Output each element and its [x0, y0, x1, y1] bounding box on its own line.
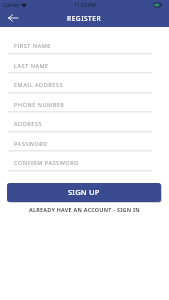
staticText: 11:23 PM — [74, 2, 96, 9]
staticText: Carrier — [3, 2, 20, 9]
button[interactable]: PASSWORD — [8, 133, 152, 152]
staticText: PHONE NUMBER — [14, 101, 65, 109]
staticText: REGISTER — [67, 14, 102, 23]
staticText: ADDRESS — [14, 120, 42, 128]
button[interactable]: CONFIRM PASSWORD — [8, 152, 152, 172]
button[interactable]: FIRST NAME — [8, 35, 152, 55]
staticText: PASSWORD — [14, 140, 48, 148]
button[interactable]: ADDRESS — [8, 113, 152, 133]
staticText: ALREADY HAVE AN ACCOUNT - SIGN IN — [29, 206, 140, 213]
button[interactable]: EMAIL ADDRESS — [8, 74, 152, 94]
button[interactable]: PHONE NUMBER — [8, 94, 152, 113]
button[interactable]: ALREADY HAVE AN ACCOUNT - SIGN IN — [25, 204, 144, 215]
staticText: EMAIL ADDRESS — [14, 81, 64, 89]
staticText: FIRST NAME — [14, 42, 51, 50]
staticText: LAST NAME — [14, 62, 49, 70]
button[interactable]: LAST NAME — [8, 55, 152, 74]
staticText: SIGN UP — [68, 187, 100, 197]
button[interactable]: SIGN UP — [7, 183, 161, 202]
staticText: CONFIRM PASSWORD — [14, 159, 79, 167]
button[interactable]: Back — [3, 10, 23, 26]
